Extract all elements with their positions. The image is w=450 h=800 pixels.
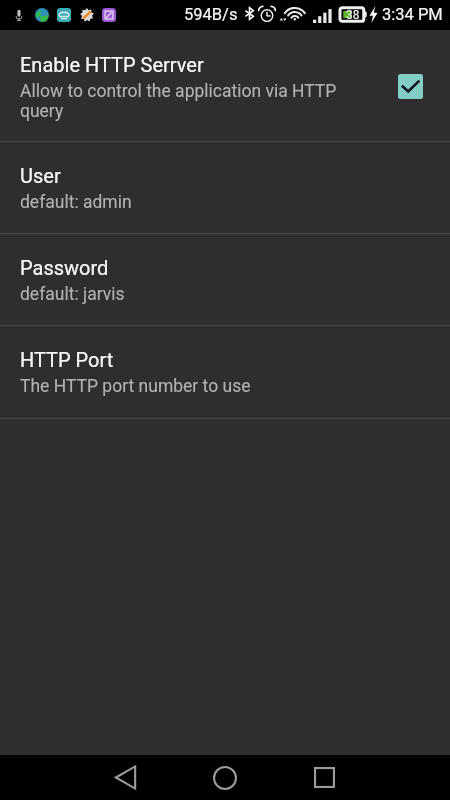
staticText: 594B/s <box>184 5 238 24</box>
staticText: Allow to control the application via HTT… <box>20 81 350 121</box>
button[interactable]: HTTP Port <box>0 326 450 418</box>
button[interactable]: Home <box>201 755 249 800</box>
button[interactable]: Back <box>101 755 149 800</box>
staticText: HTTP Port <box>20 348 114 371</box>
staticText: default: jarvis <box>20 284 125 305</box>
staticText: 3:34 PM <box>382 5 443 24</box>
staticText: Password <box>20 256 109 279</box>
staticText: default: admin <box>20 192 132 213</box>
staticText: The HTTP port number to use <box>20 376 251 397</box>
button[interactable]: User <box>0 142 450 233</box>
button[interactable]: Enable HTTP Serrver <box>0 30 450 141</box>
button[interactable]: Enable HTTP server toggle <box>390 65 430 105</box>
staticText: User <box>20 164 61 187</box>
staticText: 38 <box>346 8 360 22</box>
button[interactable]: Password <box>0 234 450 325</box>
button[interactable]: Recent apps <box>300 755 348 800</box>
staticText: Enable HTTP Serrver <box>20 53 204 76</box>
